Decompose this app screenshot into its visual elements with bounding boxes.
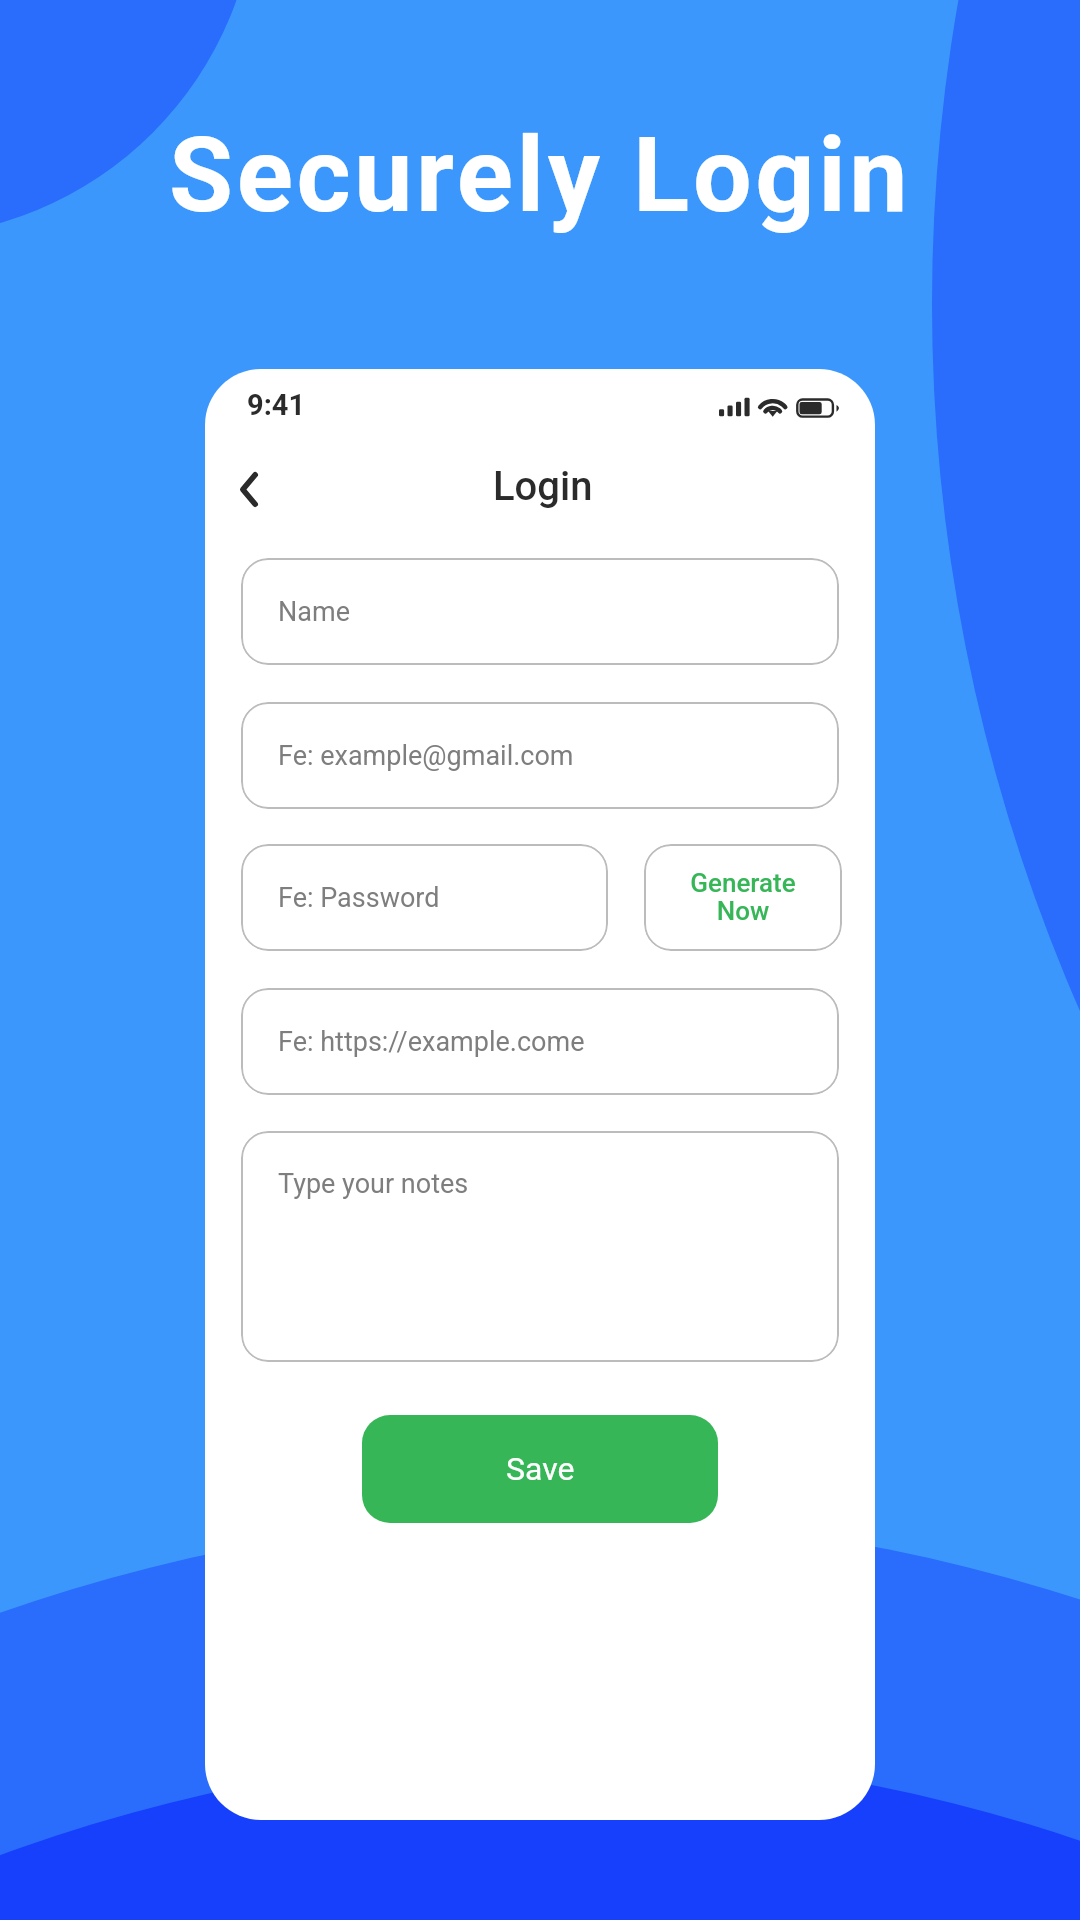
button[interactable]: Type your notes: [241, 1131, 839, 1362]
button[interactable]: Fe: example@gmail.com: [241, 702, 839, 809]
staticText: 9:41: [247, 388, 306, 422]
staticText: Type your notes: [278, 1168, 469, 1200]
button[interactable]: Name: [241, 558, 839, 665]
button[interactable]: Fe: Password: [241, 844, 608, 951]
button[interactable]: Save: [362, 1415, 718, 1523]
button[interactable]: Back: [223, 463, 275, 515]
button[interactable]: Generate Now: [644, 844, 842, 951]
staticText: Fe: Password: [278, 882, 440, 914]
staticText: Save: [506, 1450, 575, 1488]
staticText: Fe: example@gmail.com: [278, 740, 574, 772]
staticText: Generate Now: [690, 868, 796, 927]
button[interactable]: Fe: https://example.come: [241, 988, 839, 1095]
staticText: Securely Login: [169, 115, 912, 237]
staticText: Name: [278, 596, 350, 628]
staticText: Login: [493, 463, 593, 510]
staticText: Fe: https://example.come: [278, 1026, 585, 1058]
